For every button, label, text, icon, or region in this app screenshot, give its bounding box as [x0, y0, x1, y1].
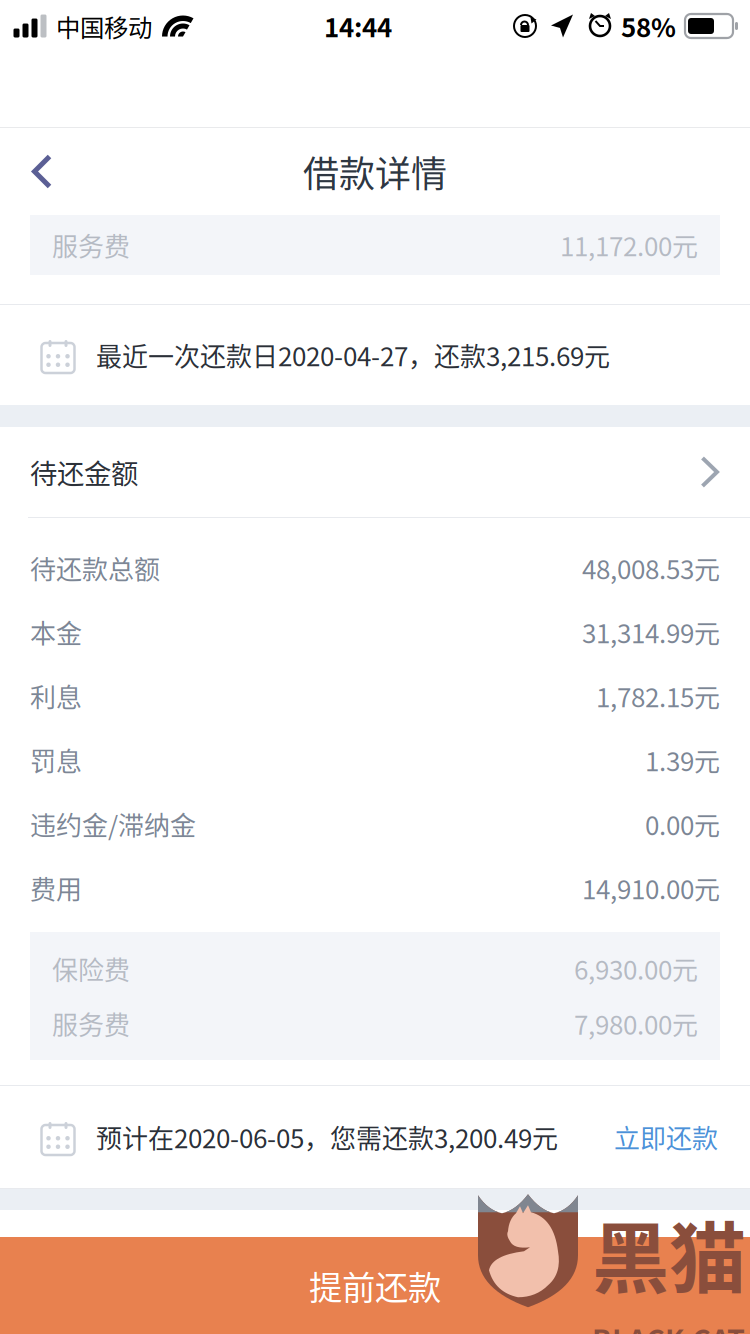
staticText: 服务费 [52, 1005, 130, 1042]
button[interactable]: 立即还款 [614, 1118, 718, 1156]
staticText: 预计在2020-06-05，您需还款3,200.49元 [96, 1118, 558, 1156]
staticText: 费用 [30, 869, 82, 907]
staticText: 借款详情 [303, 145, 447, 197]
staticText: 最近一次还款日2020-04-27，还款3,215.69元 [96, 336, 610, 374]
button[interactable]: 提前还款 [0, 1237, 750, 1334]
staticText: 待还款总额 [30, 549, 160, 587]
staticText: 31,314.99元 [582, 613, 720, 651]
staticText: BLACK CAT [592, 1317, 745, 1334]
staticText: 中国移动 [56, 8, 152, 44]
button[interactable]: 返回 [0, 128, 84, 215]
staticText: 6,930.00元 [574, 950, 698, 987]
staticText: 14:44 [324, 7, 392, 45]
staticText: 待还金额 [30, 452, 138, 492]
staticText: 保险费 [52, 950, 130, 987]
staticText: 服务费 [52, 226, 130, 264]
staticText: 58% [621, 7, 676, 45]
staticText: 1,782.15元 [596, 677, 720, 715]
staticText: 提前还款 [309, 1261, 441, 1310]
staticText: 1.39元 [645, 741, 720, 779]
staticText: 48,008.53元 [582, 549, 720, 587]
button[interactable]: 待还金额 [0, 427, 750, 517]
staticText: 0.00元 [645, 805, 720, 843]
staticText: 立即还款 [614, 1118, 718, 1156]
staticText: 违约金/滞纳金 [30, 805, 196, 843]
staticText: 11,172.00元 [560, 226, 698, 264]
staticText: 罚息 [30, 741, 82, 779]
staticText: 黑猫 [592, 1197, 746, 1309]
staticText: 14,910.00元 [582, 869, 720, 907]
staticText: 利息 [30, 677, 82, 715]
staticText: 本金 [30, 613, 82, 651]
staticText: 7,980.00元 [574, 1005, 698, 1042]
